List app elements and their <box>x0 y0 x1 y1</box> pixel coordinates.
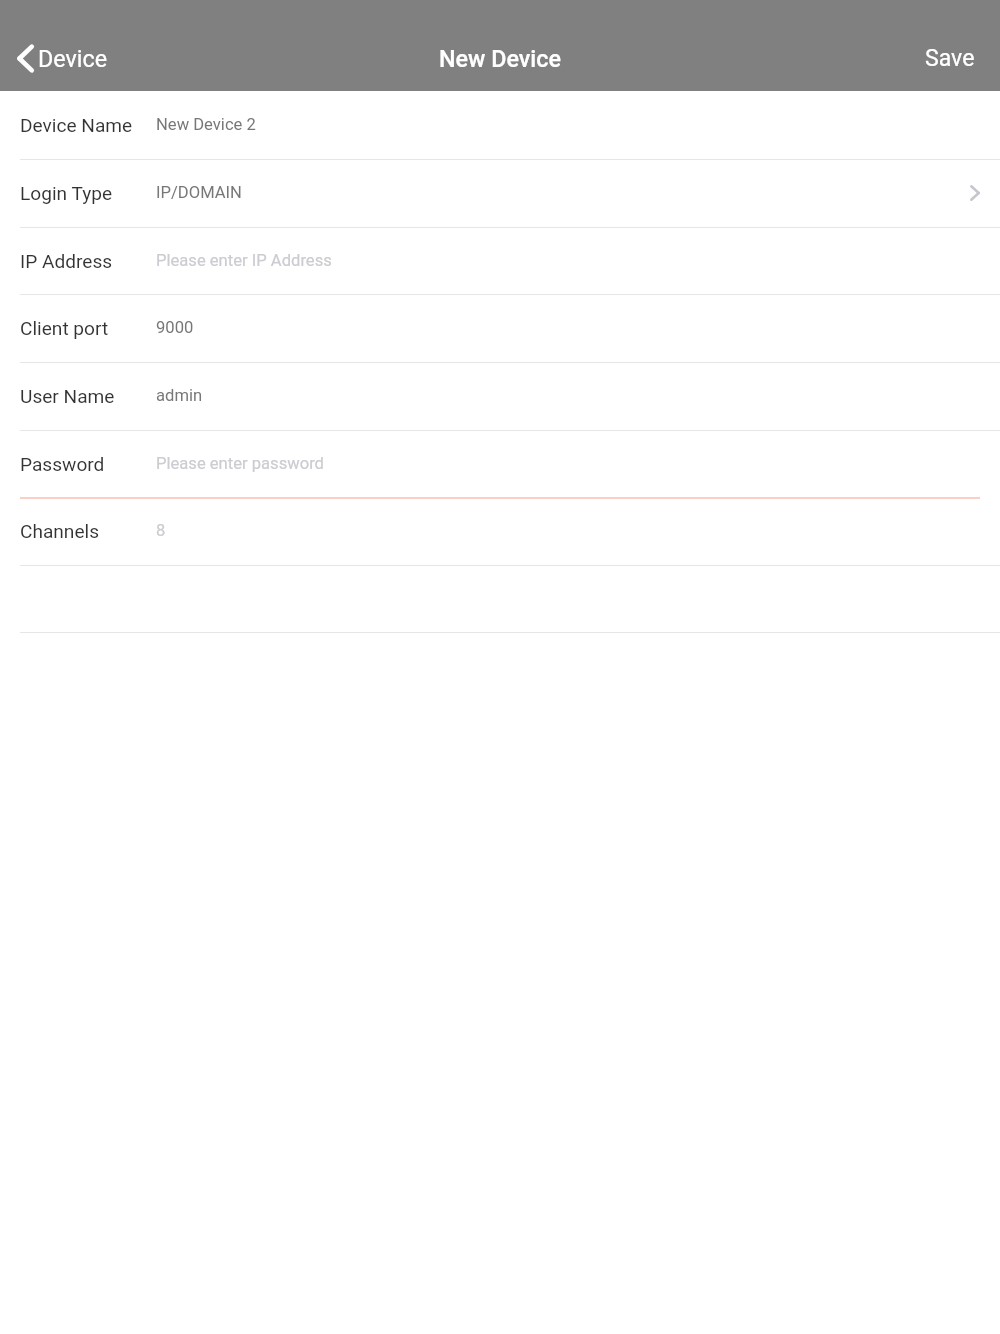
staticText: IP Address <box>20 250 113 272</box>
staticText: IP/DOMAIN <box>156 183 242 202</box>
staticText: User Name <box>20 385 115 407</box>
staticText: Login Type <box>20 182 113 204</box>
button[interactable]: Password <box>0 430 1000 498</box>
button[interactable]: Back <box>0 26 121 91</box>
staticText: Device <box>38 45 107 72</box>
staticText: Device Name <box>20 114 133 136</box>
button[interactable]: Save <box>899 26 1000 91</box>
staticText: Please enter password <box>156 454 324 473</box>
staticText: Password <box>20 453 105 475</box>
staticText: admin <box>156 386 203 405</box>
button[interactable]: Client port <box>0 294 1000 362</box>
other: Back <box>17 45 33 72</box>
staticText: Please enter IP Address <box>156 251 332 270</box>
button[interactable]: Device Name <box>0 91 1000 159</box>
button[interactable]: Channels <box>0 497 1000 565</box>
button[interactable]: IP Address <box>0 227 1000 295</box>
staticText: New Device <box>439 45 561 72</box>
staticText: New Device 2 <box>156 115 256 134</box>
staticText: Channels <box>20 520 100 542</box>
button[interactable]: User Name <box>0 362 1000 430</box>
staticText: 8 <box>156 521 166 540</box>
staticText: Client port <box>20 317 109 339</box>
button[interactable]: Login Type <box>0 159 1000 227</box>
staticText: 9000 <box>156 318 194 337</box>
staticText: Save <box>925 45 975 72</box>
